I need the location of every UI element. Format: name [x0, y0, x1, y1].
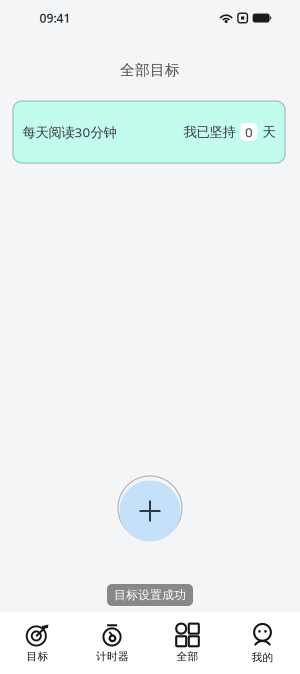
staticText: 每天阅读30分钟 — [22, 123, 116, 141]
button[interactable]: Add goal — [115, 476, 185, 546]
staticText: 全部 — [176, 650, 198, 663]
staticText: 目标 — [26, 650, 48, 663]
button[interactable]: 每天阅读30分钟 — [13, 101, 285, 163]
staticText: 我已坚持 — [183, 124, 235, 140]
staticText: 目标设置成功 — [114, 588, 186, 602]
staticText: 我的 — [251, 651, 273, 664]
staticText: 计时器 — [96, 650, 129, 663]
staticText: 天 — [262, 124, 275, 140]
button[interactable]: 计时器 — [75, 615, 150, 671]
button[interactable]: 全部 — [150, 615, 225, 671]
button[interactable]: 我的 — [225, 615, 300, 671]
button[interactable]: 目标设置成功 — [107, 584, 193, 606]
staticText: 全部目标 — [120, 61, 180, 79]
staticText: 09:41 — [39, 10, 70, 26]
button[interactable]: 目标 — [0, 615, 75, 671]
staticText: 0 — [245, 123, 253, 141]
